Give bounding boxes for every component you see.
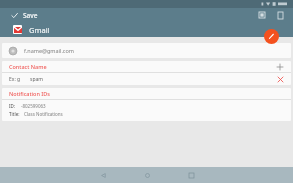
button[interactable]: Back bbox=[89, 167, 117, 183]
button[interactable]: Preview bbox=[255, 8, 269, 22]
other: Add bbox=[275, 62, 285, 72]
button[interactable]: Recent apps bbox=[177, 167, 205, 183]
staticText: Contact Name bbox=[9, 63, 47, 70]
staticText: Title: bbox=[9, 111, 20, 117]
staticText: spam bbox=[30, 76, 43, 83]
button[interactable]: Notification IDs bbox=[2, 88, 291, 99]
staticText: Notification IDs bbox=[9, 90, 50, 97]
staticText: Gmail bbox=[29, 25, 50, 35]
staticText: -802599063 bbox=[21, 103, 46, 109]
button[interactable]: Compose bbox=[264, 29, 279, 44]
staticText: ID: bbox=[9, 103, 16, 109]
button[interactable]: Ex: g bbox=[2, 73, 291, 85]
staticText: Ex: g bbox=[9, 76, 21, 83]
staticText: Class Notifications bbox=[24, 111, 63, 117]
staticText: f.name@gmail.com bbox=[24, 47, 74, 54]
staticText: Save bbox=[23, 11, 38, 20]
button[interactable]: Delete bbox=[273, 8, 287, 22]
button[interactable]: f.name@gmail.com bbox=[2, 43, 291, 58]
button[interactable]: Save bbox=[9, 10, 40, 21]
button[interactable]: Contact Name bbox=[2, 61, 291, 72]
button[interactable]: ID: bbox=[2, 100, 291, 121]
other: Remove bbox=[275, 74, 285, 84]
button[interactable]: Home bbox=[133, 167, 161, 183]
